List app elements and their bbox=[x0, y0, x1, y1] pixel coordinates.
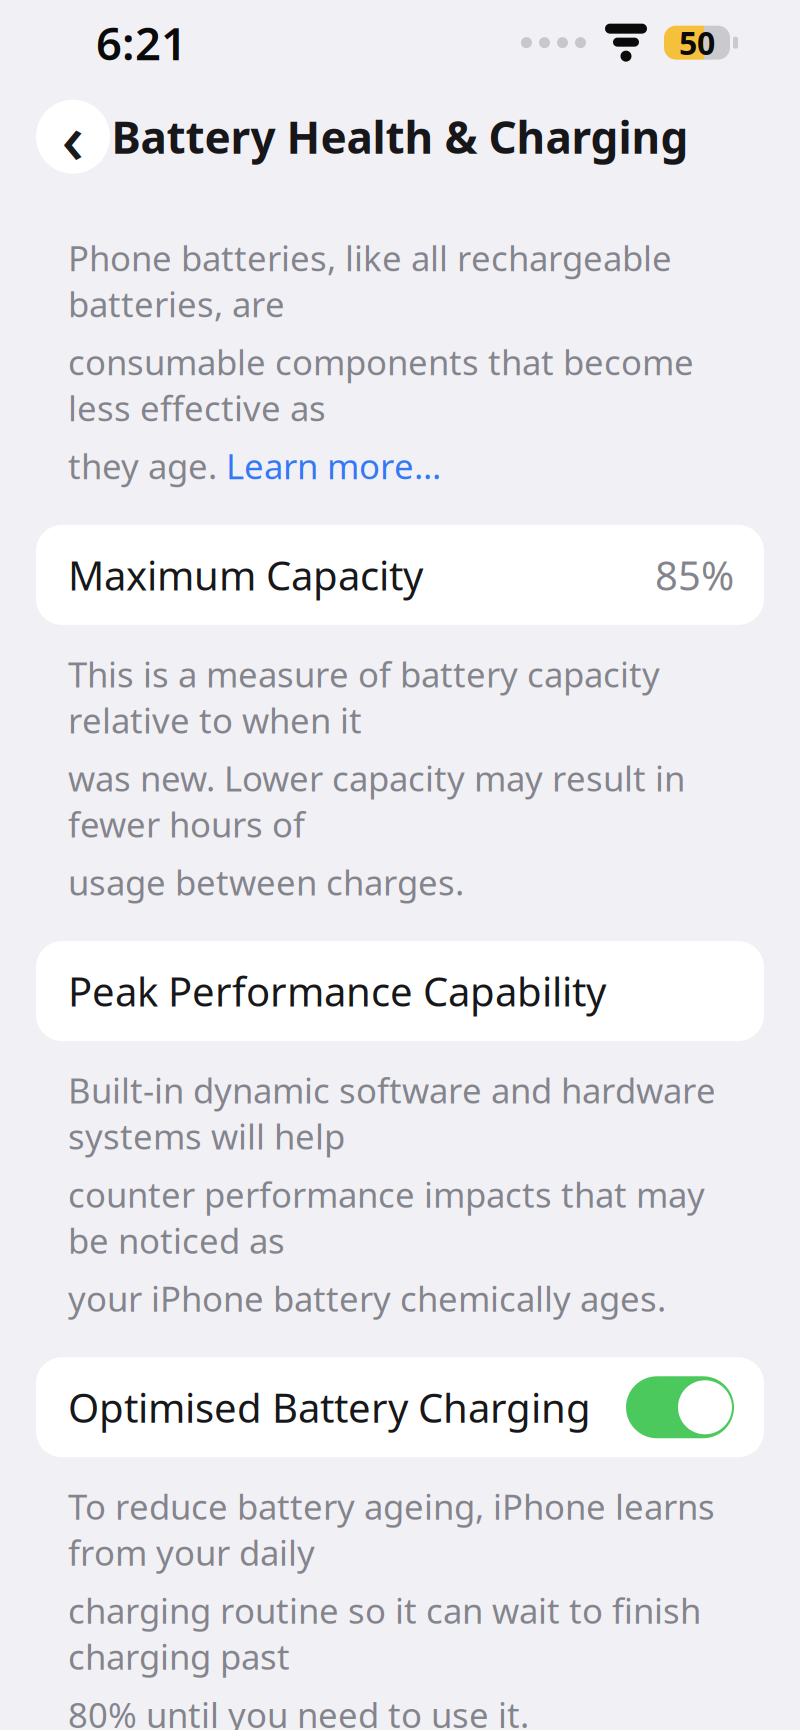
staticText: Maximum Capacity bbox=[68, 548, 423, 601]
staticText: Peak Performance Capability bbox=[68, 964, 606, 1018]
staticText: To reduce battery ageing, iPhone learns … bbox=[68, 1483, 715, 1575]
staticText: Battery Health & Charging bbox=[111, 107, 688, 166]
staticText: charging routine so it can wait to finis… bbox=[68, 1587, 701, 1679]
staticText: ‹ bbox=[61, 91, 84, 183]
staticText: your iPhone battery chemically ages. bbox=[68, 1275, 666, 1321]
staticText: 85% bbox=[655, 548, 734, 601]
staticText: Learn more... bbox=[226, 443, 441, 489]
button[interactable]: Back bbox=[36, 100, 110, 174]
staticText: counter performance impacts that may be … bbox=[68, 1171, 705, 1263]
staticText: consumable components that become less e… bbox=[68, 339, 694, 431]
staticText: 80% until you need to use it. bbox=[68, 1691, 529, 1730]
staticText: 50 bbox=[679, 21, 715, 64]
staticText: they age. bbox=[68, 443, 226, 489]
staticText: Optimised Battery Charging bbox=[68, 1381, 591, 1434]
staticText: usage between charges. bbox=[68, 859, 464, 905]
staticText: was new. Lower capacity may result in fe… bbox=[68, 755, 685, 847]
staticText: Phone batteries, like all rechargeable b… bbox=[68, 235, 672, 327]
button[interactable]: Optimised Battery Charging bbox=[626, 1376, 734, 1438]
button[interactable]: Learn more... bbox=[226, 443, 441, 489]
button[interactable]: Peak Performance Capability bbox=[36, 941, 764, 1041]
staticText: This is a measure of battery capacity re… bbox=[68, 651, 660, 743]
staticText: 6:21 bbox=[96, 12, 187, 73]
staticText: Built-in dynamic software and hardware s… bbox=[68, 1067, 716, 1159]
